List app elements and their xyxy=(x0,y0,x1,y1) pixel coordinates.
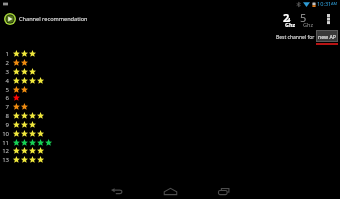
staticText: 10:31 xyxy=(317,0,332,8)
staticText: 3 xyxy=(5,68,9,76)
button[interactable]: 12 xyxy=(0,146,340,155)
staticText: new AP xyxy=(318,33,336,40)
staticText: 7 xyxy=(5,103,9,111)
button[interactable]: 3 xyxy=(0,67,340,76)
button[interactable]: Home xyxy=(156,177,184,199)
button[interactable]: new AP xyxy=(316,30,338,42)
button[interactable]: 1 xyxy=(0,49,340,58)
staticText: 2 xyxy=(5,59,9,67)
staticText: 4 xyxy=(5,77,9,85)
staticText: 10 xyxy=(2,130,9,138)
button[interactable]: 5 xyxy=(0,85,340,94)
staticText: 1 xyxy=(5,50,9,58)
staticText: AM xyxy=(331,1,338,6)
button[interactable]: 4 xyxy=(0,76,340,85)
button[interactable]: 9 xyxy=(0,120,340,129)
staticText: Ghz xyxy=(303,21,313,28)
staticText: 2 xyxy=(283,10,290,25)
button[interactable]: 8 xyxy=(0,111,340,120)
staticText: .4 xyxy=(286,17,291,24)
button[interactable]: Recent apps xyxy=(210,177,238,199)
button[interactable]: 10 xyxy=(0,129,340,138)
button[interactable]: More options xyxy=(322,10,335,28)
button[interactable]: Channel recommendation xyxy=(4,13,88,25)
staticText: 5 xyxy=(300,10,307,25)
button[interactable]: 2 xyxy=(0,58,340,67)
staticText: Channel recommendation xyxy=(19,15,88,23)
staticText: 12 xyxy=(2,147,9,155)
staticText: 11 xyxy=(2,139,9,147)
staticText: 5 xyxy=(5,86,9,94)
button[interactable]: Back xyxy=(103,177,131,199)
button[interactable]: 5 xyxy=(299,6,319,28)
staticText: 8 xyxy=(5,112,9,120)
button[interactable]: 2 xyxy=(278,6,298,28)
staticText: Best channel for xyxy=(276,34,315,41)
button[interactable]: 13 xyxy=(0,155,340,164)
staticText: Ghz xyxy=(285,21,296,28)
button[interactable]: 7 xyxy=(0,102,340,111)
button[interactable]: 11 xyxy=(0,138,340,147)
staticText: 6 xyxy=(5,94,9,102)
button[interactable]: 6 xyxy=(0,93,340,102)
staticText: 9 xyxy=(5,121,9,129)
staticText: 13 xyxy=(2,156,9,164)
